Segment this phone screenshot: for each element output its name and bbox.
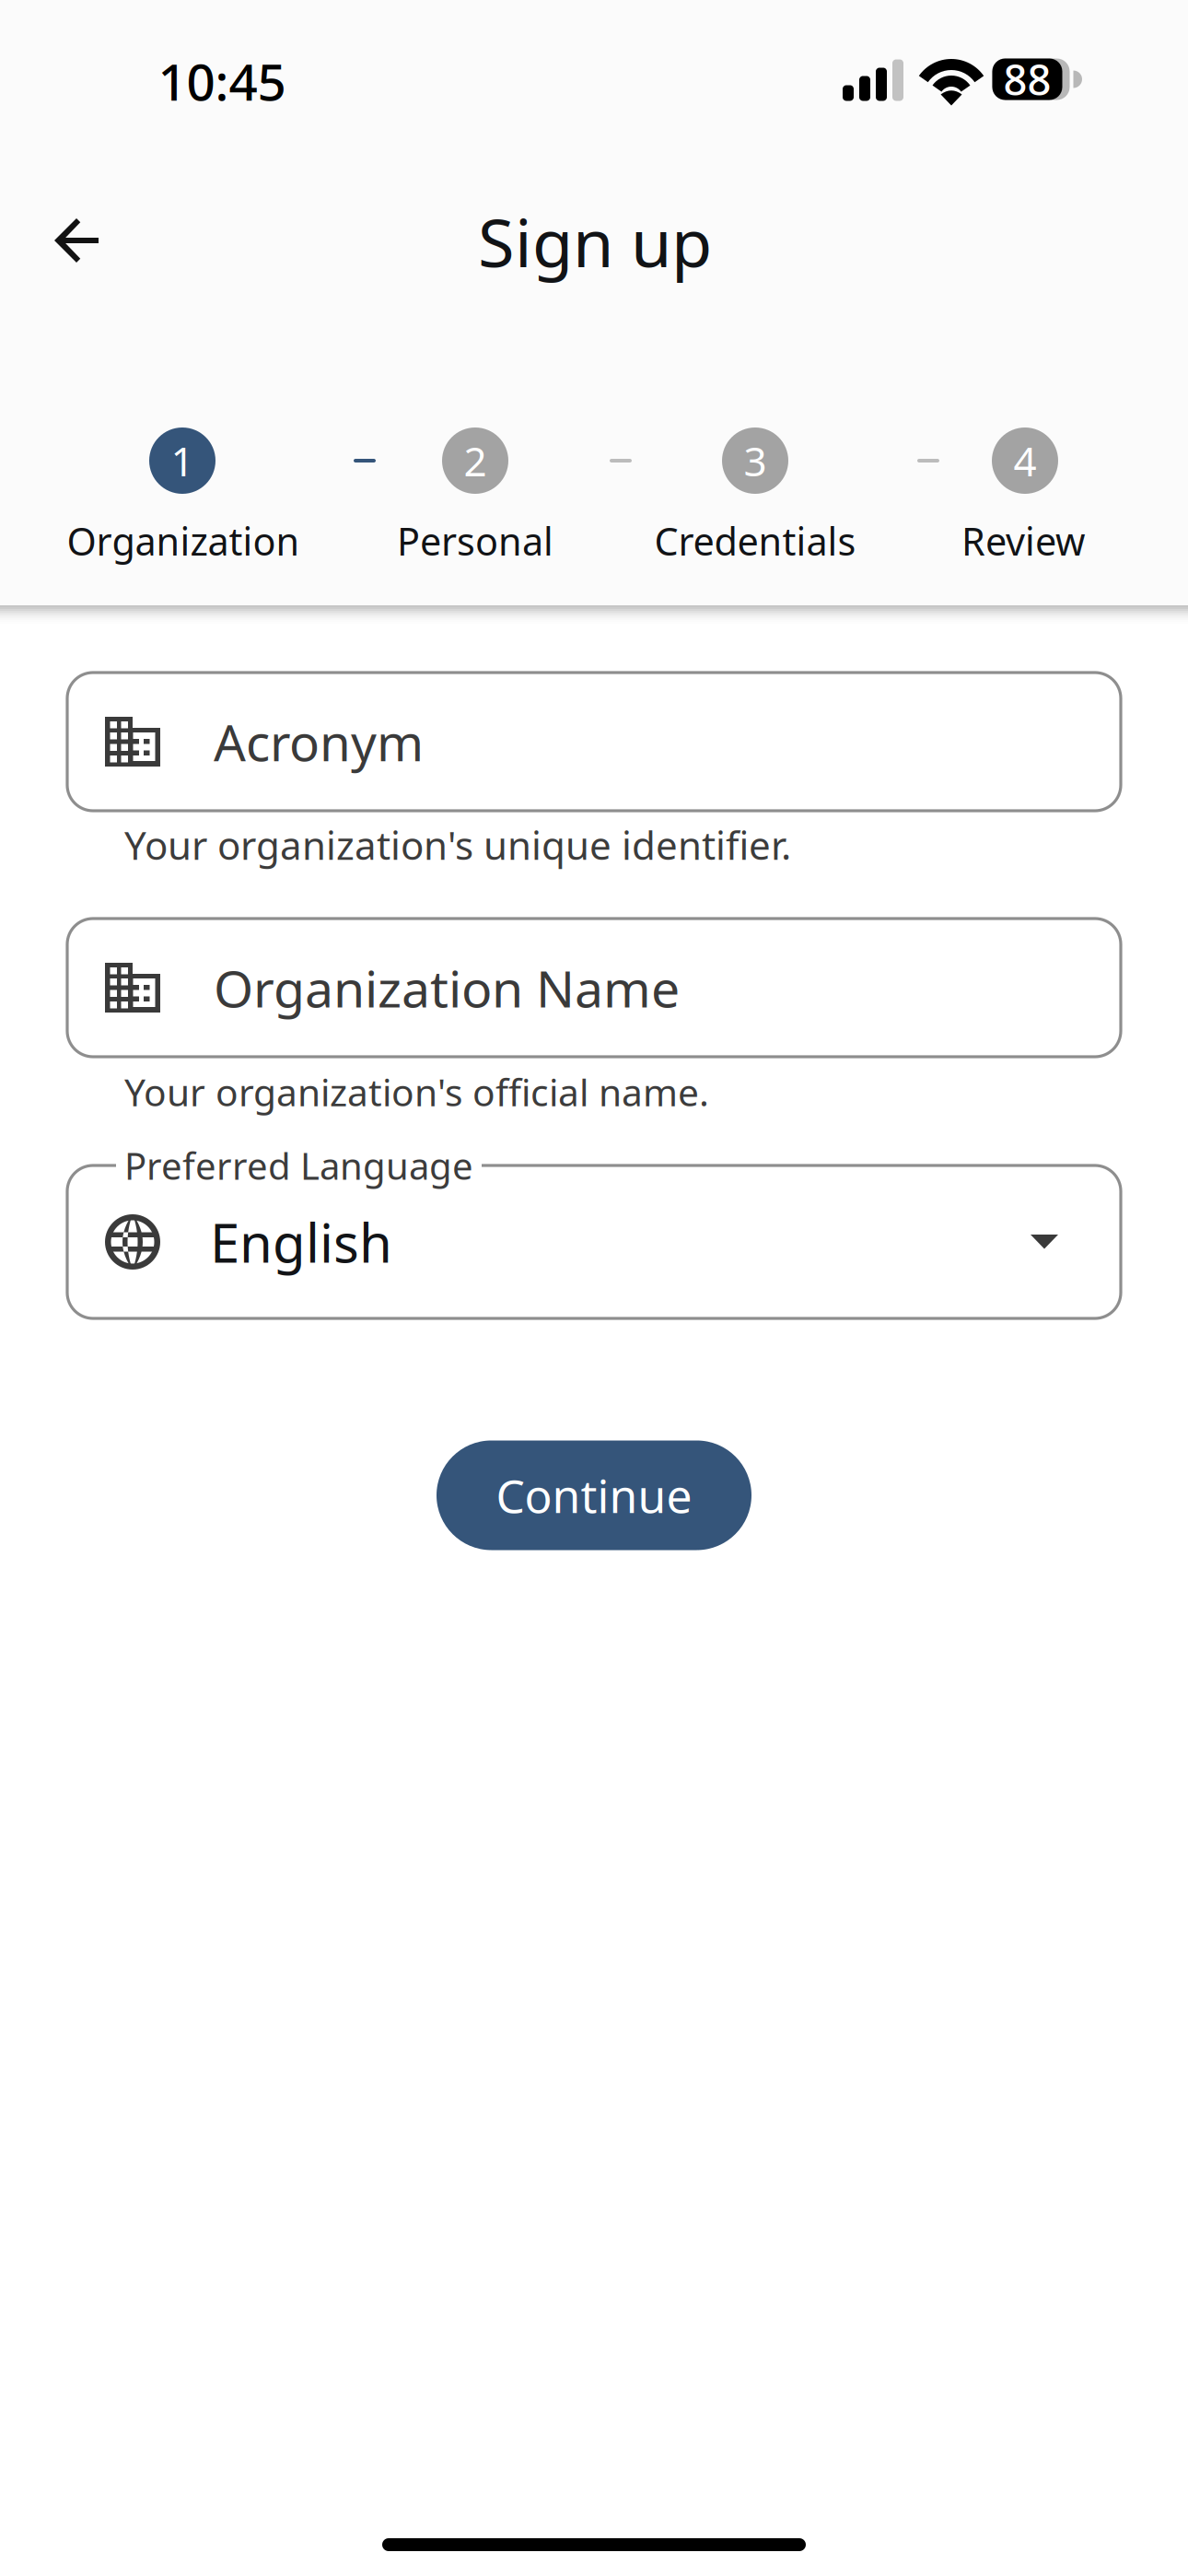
staticText: Preferred Language: [124, 1140, 473, 1191]
staticText: Organization: [67, 515, 300, 567]
staticText: Organization Name: [214, 953, 680, 1022]
staticText: English: [210, 1206, 392, 1278]
button[interactable]: English: [67, 1165, 1121, 1318]
staticText: 1: [171, 433, 194, 488]
staticText: 4: [1013, 433, 1037, 488]
button[interactable]: Acronym: [67, 673, 1121, 811]
staticText: Your organization's official name.: [124, 1066, 709, 1117]
button[interactable]: Organization Name: [67, 919, 1121, 1057]
staticText: 2: [464, 433, 487, 488]
staticText: Continue: [496, 1464, 692, 1526]
staticText: Your organization's unique identifier.: [124, 818, 791, 871]
button[interactable]: Continue: [437, 1440, 751, 1550]
staticText: Acronym: [214, 707, 424, 776]
staticText: Review: [961, 515, 1085, 567]
staticText: Credentials: [654, 515, 856, 567]
staticText: 10:45: [158, 47, 286, 115]
staticText: Personal: [397, 515, 553, 567]
button[interactable]: Back: [13, 176, 142, 305]
staticText: 88: [1003, 51, 1051, 108]
staticText: 3: [744, 433, 767, 488]
staticText: Sign up: [478, 196, 712, 287]
